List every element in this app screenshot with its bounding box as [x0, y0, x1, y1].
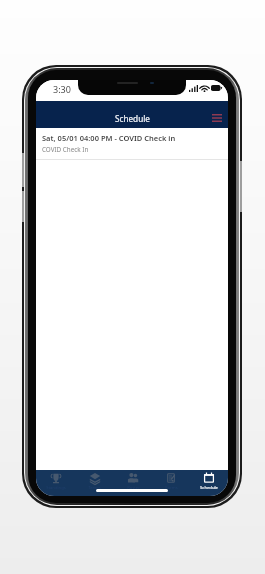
staticText: Schedule [200, 485, 218, 491]
staticText: Forms [165, 485, 178, 491]
staticText: Teams [88, 485, 101, 491]
button[interactable]: Standings [36, 470, 75, 496]
button[interactable]: Forms [152, 470, 190, 496]
staticText: 3:30 [53, 83, 71, 95]
staticText: Schedule [115, 113, 150, 124]
staticText: Roster [127, 485, 140, 491]
button[interactable]: Roster [114, 470, 152, 496]
button[interactable]: Menu [209, 110, 225, 126]
staticText: Sat, 05/01 04:00 PM - COVID Check in [42, 133, 176, 143]
button[interactable]: Schedule [190, 470, 228, 496]
button[interactable]: Teams [75, 470, 114, 496]
button[interactable]: Sat, 05/01 04:00 PM - COVID Check in [36, 128, 228, 159]
staticText: COVID Check In [42, 145, 89, 154]
